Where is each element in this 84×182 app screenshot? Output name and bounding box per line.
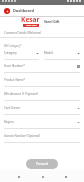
button[interactable]: Product Name* [0,74,84,86]
staticText: Bill Category* [4,44,22,48]
button[interactable]: Store Number* [0,60,84,72]
staticText: Model [44,51,77,55]
button[interactable]: Home [38,172,47,181]
staticText: Store Number* [4,64,77,68]
staticText: Invoice Number (Optional) [4,134,80,138]
button[interactable]: Proceed [26,159,58,169]
staticText: Kesar [21,15,40,24]
staticText: Steel Gift [44,19,60,24]
button[interactable]: Profile [4,8,10,14]
staticText: Customer Details (Welcome) [4,31,42,35]
button[interactable]: Back [14,172,23,181]
staticText: Dashboard [13,8,35,13]
staticText: Proceed [36,162,48,166]
staticText: Card Owner [4,106,77,110]
staticText: STEEL GIFT [26,24,37,27]
staticText: Category [4,51,36,55]
staticText: Bills Amount (₹ Payment) [4,92,80,96]
button[interactable]: Recents [61,172,70,181]
button[interactable]: Invoice Number (Optional) [0,130,84,142]
staticText: Region [4,120,77,124]
button[interactable]: Card Owner [0,102,84,114]
button[interactable]: Category [4,51,39,55]
button[interactable]: Model [44,51,80,55]
button[interactable]: Bills Amount (₹ Payment) [0,88,84,100]
staticText: Product Name* [4,78,80,82]
button[interactable]: Region [0,116,84,128]
